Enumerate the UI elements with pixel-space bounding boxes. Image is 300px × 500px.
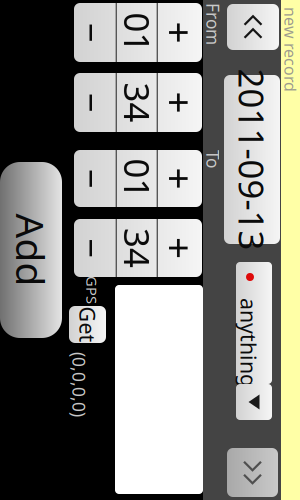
button[interactable]: Add bbox=[62, 338, 238, 400]
button[interactable]: 01 bbox=[50, 242, 107, 283]
staticText: – bbox=[0, 279, 12, 330]
staticText: To bbox=[50, 175, 68, 198]
staticText: (0,0,0,0) bbox=[252, 309, 300, 332]
staticText: + bbox=[0, 194, 13, 246]
button[interactable]: Increment bbox=[50, 198, 107, 242]
staticText: – bbox=[69, 279, 88, 330]
staticText: 01 bbox=[58, 239, 98, 285]
button[interactable]: anything bbox=[162, 128, 300, 164]
staticText: 34 bbox=[128, 239, 168, 285]
staticText: + bbox=[137, 194, 159, 246]
button[interactable]: Decrement bbox=[50, 283, 107, 326]
button[interactable]: 34 bbox=[0, 242, 32, 283]
button[interactable]: 2011-09-13 bbox=[0, 120, 144, 176]
button[interactable]: Increment bbox=[119, 198, 177, 242]
button[interactable]: Get bbox=[206, 294, 243, 331]
staticText: – bbox=[138, 279, 157, 330]
staticText: anything bbox=[198, 137, 287, 165]
staticText: Get bbox=[206, 298, 242, 327]
button[interactable]: 34 bbox=[119, 242, 177, 283]
staticText: Add bbox=[113, 343, 186, 395]
button[interactable]: Decrement bbox=[119, 283, 177, 326]
staticText: GPS bbox=[176, 298, 204, 318]
staticText: + bbox=[67, 194, 89, 246]
staticText: 2011-09-13 bbox=[0, 125, 150, 171]
staticText: 34 bbox=[0, 239, 22, 285]
button[interactable]: Increment bbox=[0, 198, 32, 242]
button[interactable]: Decrement bbox=[0, 283, 32, 326]
